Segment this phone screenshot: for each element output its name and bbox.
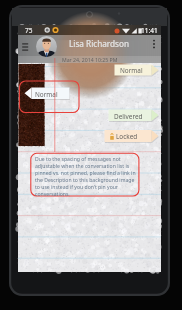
staticText: Due to the spacing of messages not adjus… — [35, 156, 136, 198]
button[interactable]: More options — [149, 36, 159, 52]
button[interactable]: Contact photo — [36, 36, 57, 57]
staticText: Normal — [35, 90, 58, 99]
staticText: Lisa Richardson — [69, 38, 130, 49]
button[interactable]: Navigate up — [19, 40, 31, 54]
button[interactable]: Normal — [25, 88, 70, 100]
staticText: Delivered — [114, 112, 143, 121]
staticText: Normal — [120, 66, 143, 75]
staticText: 11:41 — [141, 26, 158, 35]
button[interactable]: Normal — [115, 65, 159, 76]
button[interactable]: Delivered — [109, 110, 159, 122]
staticText: 75 — [25, 26, 33, 35]
staticText: Locked — [116, 132, 138, 141]
staticText: Mar 24, 2014 10:25 PM — [62, 56, 118, 63]
button[interactable]: Locked — [105, 130, 159, 142]
